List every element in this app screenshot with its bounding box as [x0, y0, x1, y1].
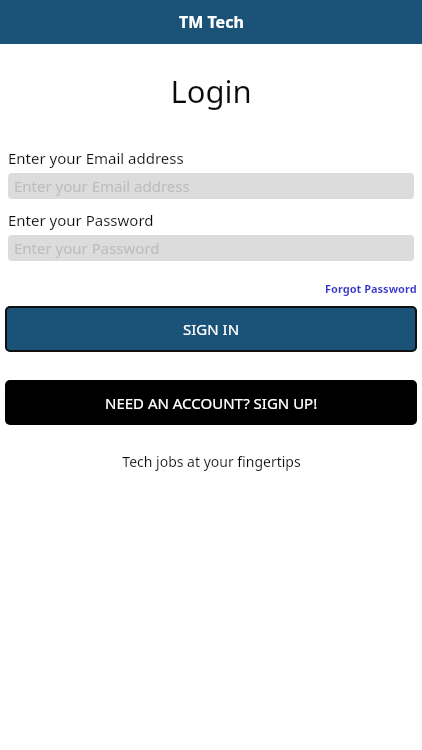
button[interactable]: Forgot Password	[320, 279, 422, 298]
staticText: Forgot Password	[325, 281, 417, 296]
staticText: Enter your Password	[14, 238, 160, 258]
staticText: TM Tech	[179, 11, 244, 33]
staticText: SIGN IN	[183, 319, 240, 339]
button[interactable]: NEED AN ACCOUNT? SIGN UP!	[5, 380, 417, 425]
button[interactable]: SIGN IN	[5, 306, 417, 352]
staticText: NEED AN ACCOUNT? SIGN UP!	[105, 393, 318, 413]
staticText: Enter your Email address	[14, 176, 190, 196]
staticText: Enter your Password	[8, 210, 154, 230]
button[interactable]: Enter your Password	[8, 235, 414, 261]
staticText: Tech jobs at your fingertips	[122, 452, 301, 471]
staticText: Enter your Email address	[8, 148, 184, 168]
button[interactable]: Enter your Email address	[8, 173, 414, 199]
staticText: Login	[170, 70, 252, 112]
